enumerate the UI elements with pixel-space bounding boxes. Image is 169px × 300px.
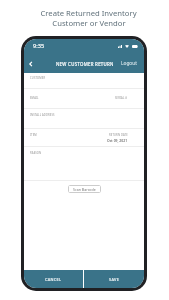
button[interactable]: EMAIL (24, 89, 144, 108)
staticText: CUSTOMER (30, 76, 46, 80)
staticText: Create Returned Inventory (40, 8, 137, 18)
button[interactable]: CUSTOMER (24, 73, 144, 88)
staticText: REASON (30, 151, 42, 155)
button[interactable]: REASON (24, 147, 144, 180)
staticText: ITEM (30, 133, 37, 137)
button[interactable]: ITEM (24, 129, 144, 146)
staticText: 9:35 (33, 42, 45, 50)
staticText: Scan Barcode (73, 187, 96, 192)
button[interactable]: CANCEL (24, 270, 83, 288)
staticText: Oct 09, 2021 (107, 138, 128, 143)
button[interactable]: Back (24, 57, 38, 71)
staticText: RETURN DATE (109, 133, 128, 137)
button[interactable]: Logout (114, 57, 144, 70)
button[interactable]: SAVE (84, 270, 144, 288)
button[interactable]: INSTALL ADDRESS (24, 109, 144, 128)
staticText: CANCEL (45, 277, 62, 282)
staticText: SERIAL # (115, 96, 128, 100)
staticText: SAVE (109, 277, 120, 282)
button[interactable]: Scan Barcode (68, 185, 101, 193)
staticText: Logout (121, 60, 137, 67)
staticText: EMAIL (30, 96, 39, 100)
staticText: INSTALL ADDRESS (30, 113, 55, 117)
staticText: NEW CUSTOMER RETURN (56, 61, 114, 67)
staticText: Customer or Vendor (52, 18, 126, 28)
